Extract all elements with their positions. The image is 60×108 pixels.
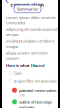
staticText: Summarise [17,6,38,11]
staticText: New conversation [10,0,43,8]
staticText: potential conversation [19,88,56,93]
staticText: project files list overview [14,78,57,84]
staticText: outline of next steps and notes [19,99,52,108]
staticText: incididunt ut labore et dolore magna [6,38,54,49]
staticText: adipiscing elit sed do eiusmod tempor [6,27,57,37]
staticText: Lorem ipsum dolor sit amet consectetur [6,15,55,25]
button[interactable]: Summarise [14,5,41,13]
button[interactable]: Back [5,0,9,3]
staticText: Here is what I found [6,63,45,68]
staticText: Task [14,71,22,76]
staticText: aliqua ut enim ad minim veniam [6,50,48,61]
staticText: draft [19,94,25,97]
